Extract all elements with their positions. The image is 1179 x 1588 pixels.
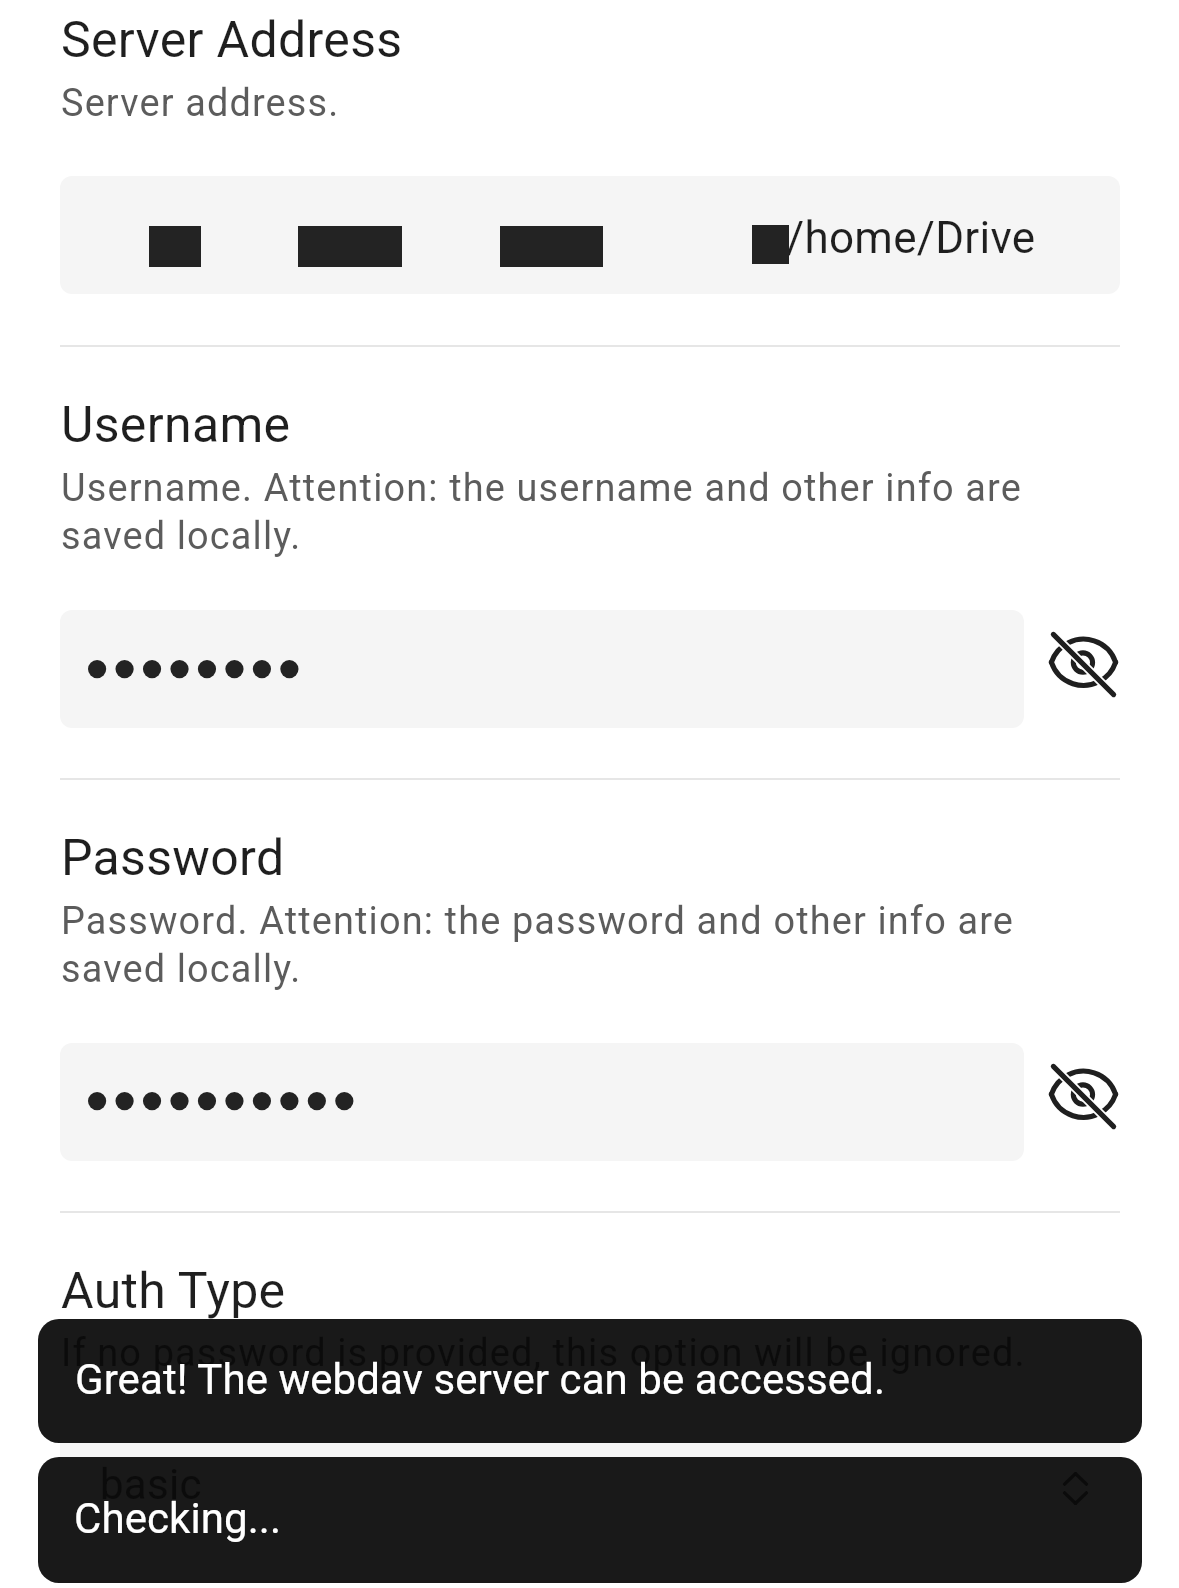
staticText: Password. Attention: the password and ot… <box>61 899 1131 992</box>
staticText: If no password is provided, this option … <box>61 1331 1131 1375</box>
staticText: Username <box>61 396 291 455</box>
button[interactable]: Toggle password visibility <box>1035 1048 1131 1144</box>
staticText: /home/Drive <box>786 212 1036 264</box>
staticText: Server Address <box>61 11 403 70</box>
staticText: If no password is provided, this option … <box>61 1331 1131 1375</box>
staticText: Server address. <box>61 81 1131 125</box>
staticText: basic <box>100 1460 202 1509</box>
staticText: Checking... <box>74 1494 282 1543</box>
button[interactable]: Select auth type <box>1040 1453 1110 1523</box>
button[interactable] <box>38 1319 1142 1443</box>
staticText: Auth Type <box>61 1262 286 1321</box>
button[interactable]: Auth type selector <box>60 1426 1120 1544</box>
button[interactable]: Toggle password visibility <box>1035 616 1131 712</box>
button[interactable]: Server address field <box>60 176 1120 294</box>
staticText: basic <box>100 1460 202 1509</box>
button[interactable]: Username field <box>60 610 1024 728</box>
staticText: Password <box>61 829 285 888</box>
button[interactable] <box>38 1457 1142 1583</box>
staticText: Username. Attention: the username and ot… <box>61 466 1131 559</box>
button[interactable]: Password field <box>60 1043 1024 1161</box>
staticText: Great! The webdav server can be accessed… <box>75 1355 886 1404</box>
button[interactable]: Select auth type <box>1040 1453 1110 1523</box>
